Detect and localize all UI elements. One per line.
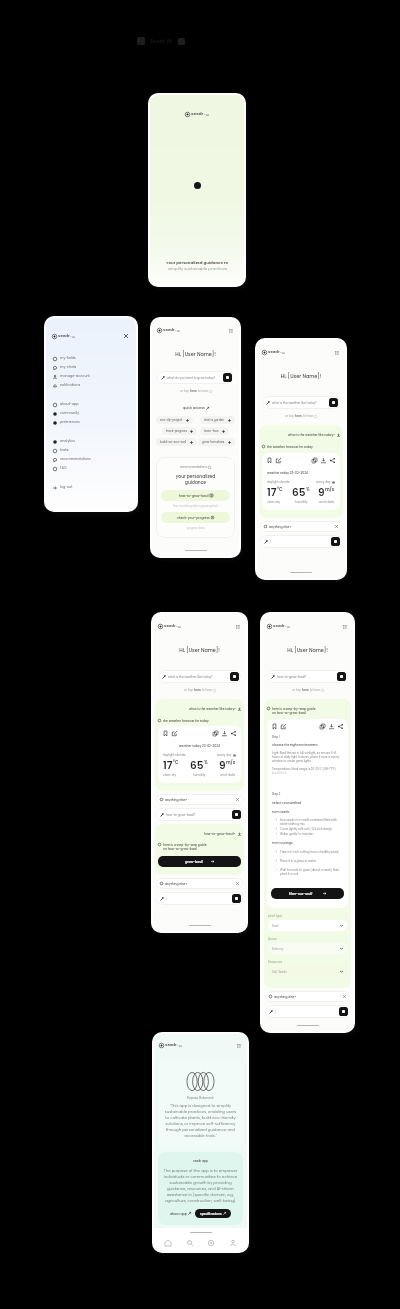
button[interactable]: how-to-grow-basil [161,490,230,501]
button[interactable]: how-to-grow-basil? [267,670,348,683]
button[interactable]: FAQ [46,464,136,473]
button[interactable]: about-app [46,400,136,409]
button[interactable]: Send [223,373,232,382]
staticText: how-to-grow-basil? [277,675,337,679]
staticText: Wait for roots to grow (about a week), t… [280,868,344,876]
staticText: From Seeds [272,810,290,814]
button[interactable]: Settings [204,1236,218,1250]
button[interactable]: Edit [171,730,178,737]
button[interactable]: tasks [46,446,136,455]
button[interactable]: | [156,892,243,905]
button[interactable]: Menu [235,1042,242,1049]
button[interactable]: Download [328,723,335,730]
staticText: progress data [161,526,230,530]
button[interactable]: Basil [268,920,347,931]
staticText: on how-to-grow-basil [272,711,307,715]
button[interactable]: Seedr AI [137,37,185,45]
button[interactable]: Bookmark [266,457,273,464]
button[interactable]: anything else? [156,878,243,889]
staticText: •AI [175,328,181,333]
staticText: Take a 4-inch cutting from a healthy pla… [280,850,339,854]
button[interactable]: Edit [275,457,282,464]
button[interactable]: Menu [341,623,348,630]
button[interactable]: Close [122,332,130,340]
staticText: start a garden [204,418,225,422]
button[interactable]: Send [232,894,241,903]
button[interactable]: anything else? [265,991,350,1002]
button[interactable]: Share [230,730,237,737]
button[interactable]: Menu [333,349,340,356]
staticText: anything else? [165,882,236,886]
button[interactable]: Copy [311,457,318,464]
staticText: my-chats [60,365,77,370]
staticText: 65 [190,758,204,773]
button[interactable]: track-progress [162,427,197,435]
button[interactable]: Share [337,723,344,730]
button[interactable]: grow-tomatoes [198,438,235,446]
staticText: here [295,414,302,418]
button[interactable]: what is the weather like today? [262,396,340,409]
button[interactable]: Download [221,730,228,737]
button[interactable]: Share [329,457,336,464]
button[interactable]: learn-how [200,427,229,435]
staticText: Seedr [268,349,280,355]
staticText: From Cuttings [272,841,293,845]
button[interactable]: Send [230,672,239,681]
staticText: here is a step-by-step guide [163,843,207,847]
button[interactable]: check-your-progress [161,512,230,523]
button[interactable]: recommendations [46,455,136,464]
button[interactable]: what do you want to grow today? [157,371,234,384]
button[interactable]: Send [339,1007,348,1016]
button[interactable]: anything else? [156,794,243,805]
staticText: Basil [272,924,279,928]
button[interactable]: Download [320,457,327,464]
button[interactable]: preferences [46,418,136,427]
button[interactable]: manage-account [46,372,136,381]
button[interactable]: filter-out-stuff [271,888,344,899]
button[interactable]: log-out [46,483,136,492]
button[interactable]: what is the weather like today? [158,670,241,683]
button[interactable]: Edit [280,723,287,730]
button[interactable]: anything else? [260,521,342,532]
button[interactable]: Profile [226,1236,240,1250]
button[interactable]: Bookmark [162,730,169,737]
button[interactable]: Menu [227,327,234,334]
button[interactable]: Menu [234,623,241,630]
button[interactable]: eco-diy-project [156,416,193,424]
staticText: build-an-eco-wall [160,440,187,444]
staticText: on how-to-grow-basil [163,847,198,851]
button[interactable]: Send [232,810,241,819]
button[interactable]: how-to-grow-basil? [156,808,243,821]
staticText: quick access [183,406,206,411]
button[interactable]: my-chats [46,363,136,372]
staticText: how-to-grow-basil [179,494,210,498]
button[interactable]: Bookmark [271,723,278,730]
button[interactable]: community [46,409,136,418]
button[interactable]: Copy [319,723,326,730]
button[interactable]: Home [161,1236,175,1250]
staticText: % [204,759,208,765]
staticText: or tap [184,688,194,692]
button[interactable]: my-fields [46,354,136,363]
button[interactable]: grow-basil [158,856,241,867]
staticText: what is the weather like today? [168,675,230,679]
staticText: m/s [325,486,335,492]
button[interactable]: Send [331,537,340,546]
button[interactable]: | [260,535,342,548]
button[interactable]: start a garden [200,416,235,424]
staticText: or tap [292,688,302,692]
button[interactable]: Soil, Seeds [268,966,347,977]
button[interactable]: Search [183,1236,197,1250]
button[interactable]: Send [337,672,346,681]
button[interactable]: analytics [46,437,136,446]
button[interactable]: specifications [195,1209,231,1218]
staticText: what is the weather like today? [288,433,335,437]
button[interactable]: build-an-eco-wall [156,438,197,446]
button[interactable]: notifications [46,381,136,390]
button[interactable]: Balcony [268,943,347,954]
button[interactable]: | [265,1005,350,1018]
button[interactable]: Copy [212,730,219,737]
staticText: •AI [70,334,76,339]
button[interactable]: Send [329,398,338,407]
staticText: my-fields [60,356,76,361]
